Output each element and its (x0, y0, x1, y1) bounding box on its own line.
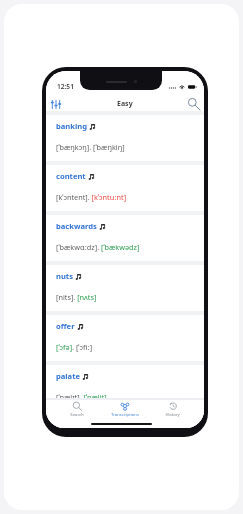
staticText: [ˈbæŋkɔŋ]. [ˈbæŋkiŋ] (56, 142, 125, 152)
staticText: 12:51 (57, 82, 74, 91)
button[interactable]: History (162, 400, 183, 416)
staticText: [kˈɔntent]. [kˈɔntuːnt] (56, 192, 127, 202)
staticText: [ˈbækwɑːdz]. [ˈbækwədz] (56, 242, 140, 252)
staticText: offer (56, 321, 75, 331)
staticText: banking (56, 121, 87, 131)
button[interactable]: offer (46, 315, 204, 361)
button[interactable]: Search (67, 400, 87, 416)
button[interactable]: Filter (50, 97, 62, 111)
staticText: Search (70, 412, 84, 418)
staticText: nuts (56, 271, 73, 281)
button[interactable]: nuts (46, 265, 204, 311)
button[interactable]: Search (186, 96, 201, 111)
button[interactable]: banking (46, 115, 204, 161)
staticText: Easy (117, 99, 133, 109)
staticText: backwards (56, 221, 97, 231)
staticText: [ˈɔfə]. [ˈɔfiː] (56, 342, 93, 352)
staticText: Transcriptions (111, 412, 139, 418)
staticText: History (165, 412, 180, 418)
button[interactable]: Transcriptions (108, 400, 142, 416)
staticText: palate (56, 371, 80, 381)
button[interactable]: palate (46, 365, 204, 411)
staticText: content (56, 171, 86, 181)
button[interactable]: backwards (46, 215, 204, 261)
staticText: [nits]. [nʌts] (56, 292, 97, 302)
button[interactable]: content (46, 165, 204, 211)
staticText: [ˈpælɪt]. [ˈpælit] (56, 392, 107, 402)
